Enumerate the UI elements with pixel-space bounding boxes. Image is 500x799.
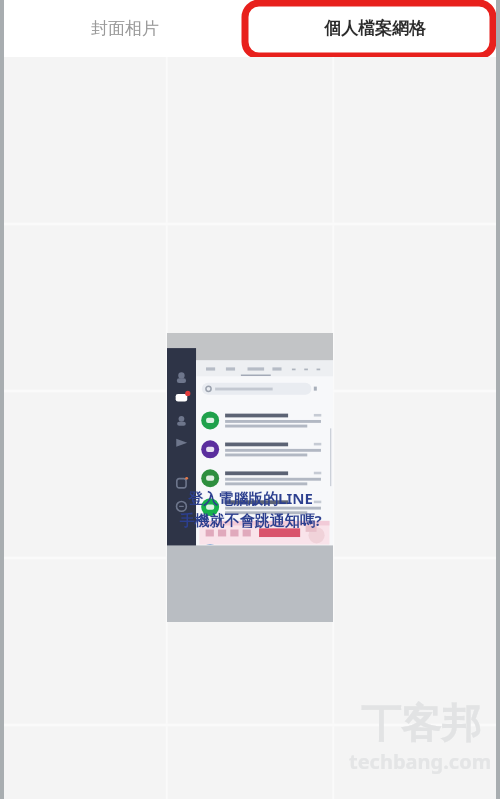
staticText: 手機就不會跳通知嗎? <box>179 510 322 530</box>
button[interactable]: LINE 電腦版通知教學貼文縮圖 <box>167 333 333 622</box>
staticText: 個人檔案網格 <box>324 18 426 39</box>
button[interactable]: 個人檔案網格 <box>250 0 500 57</box>
button[interactable]: 封面相片 <box>0 0 250 57</box>
staticText: techbang.com <box>349 748 492 775</box>
staticText: 登入電腦版的LINE <box>188 488 313 508</box>
staticText: 丅客邦 <box>361 698 481 748</box>
staticText: 封面相片 <box>91 18 159 39</box>
